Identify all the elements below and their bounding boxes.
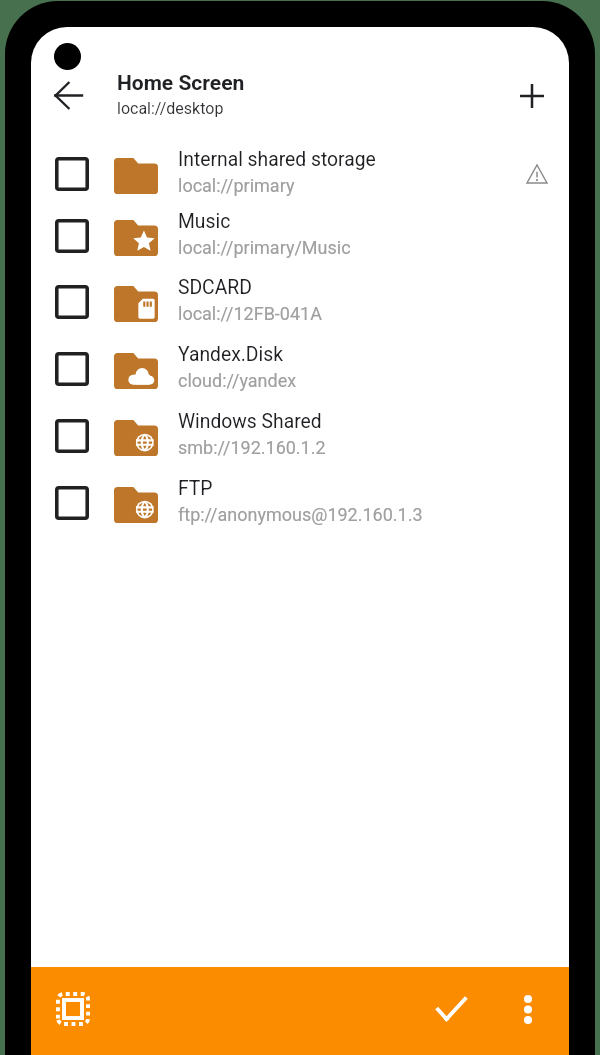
- button[interactable]: Back: [44, 71, 92, 119]
- staticText: Yandex.Disk: [178, 343, 283, 366]
- staticText: local://12FB-041A: [178, 303, 322, 324]
- staticText: local://primary: [178, 175, 295, 196]
- staticText: Home Screen: [117, 71, 245, 96]
- staticText: local://desktop: [117, 99, 224, 118]
- button[interactable]: Select all: [48, 984, 98, 1034]
- button[interactable]: Confirm: [427, 985, 475, 1033]
- staticText: local://primary/Music: [178, 237, 351, 258]
- staticText: Windows Shared: [178, 410, 322, 433]
- button[interactable]: Windows Shared: [31, 419, 569, 471]
- staticText: FTP: [178, 477, 213, 500]
- button[interactable]: SDCARD: [31, 285, 569, 337]
- button[interactable]: Internal shared storage: [31, 157, 569, 209]
- staticText: smb://192.160.1.2: [178, 437, 326, 458]
- button[interactable]: More options: [504, 985, 552, 1033]
- staticText: ftp://anonymous@192.160.1.3: [178, 504, 423, 525]
- button[interactable]: Add: [508, 72, 556, 120]
- staticText: SDCARD: [178, 276, 252, 299]
- staticText: cloud://yandex: [178, 370, 297, 391]
- button[interactable]: Yandex.Disk: [31, 352, 569, 404]
- staticText: Music: [178, 210, 231, 233]
- button[interactable]: FTP: [31, 486, 569, 538]
- staticText: Internal shared storage: [178, 148, 376, 171]
- button[interactable]: Music: [31, 219, 569, 271]
